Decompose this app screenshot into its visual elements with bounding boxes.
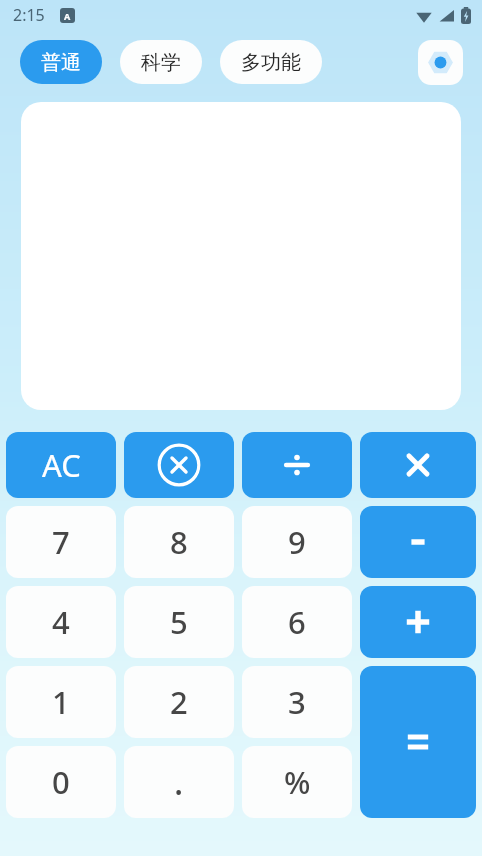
button[interactable]: 科学 bbox=[120, 40, 202, 84]
staticText: 4 bbox=[52, 601, 70, 643]
button[interactable]: % bbox=[242, 746, 352, 818]
button[interactable]: 多功能 bbox=[220, 40, 322, 84]
staticText: 7 bbox=[52, 521, 70, 563]
button[interactable]: 7 bbox=[6, 506, 116, 578]
staticText: 0 bbox=[52, 761, 70, 803]
staticText: 6 bbox=[288, 601, 306, 643]
button[interactable]: Multiply bbox=[360, 432, 476, 498]
button[interactable]: 6 bbox=[242, 586, 352, 658]
staticText: 5 bbox=[170, 601, 188, 643]
button[interactable]: 2 bbox=[124, 666, 234, 738]
button[interactable]: 普通 bbox=[20, 40, 102, 84]
staticText: 多功能 bbox=[241, 50, 301, 75]
button[interactable]: Theme settings bbox=[418, 40, 463, 85]
staticText: 2:15 bbox=[13, 4, 45, 26]
button[interactable]: 8 bbox=[124, 506, 234, 578]
button[interactable]: . bbox=[124, 746, 234, 818]
button[interactable]: 5 bbox=[124, 586, 234, 658]
staticText: 科学 bbox=[141, 50, 181, 75]
button[interactable]: Add bbox=[360, 586, 476, 658]
staticText: 普通 bbox=[41, 50, 81, 75]
button[interactable]: All clear bbox=[6, 432, 116, 498]
button[interactable]: Equals bbox=[360, 666, 476, 818]
button[interactable]: 1 bbox=[6, 666, 116, 738]
button[interactable]: Divide bbox=[242, 432, 352, 498]
button[interactable]: Subtract bbox=[360, 506, 476, 578]
staticText: % bbox=[284, 761, 311, 803]
staticText: 9 bbox=[288, 521, 306, 563]
staticText: A bbox=[64, 10, 71, 22]
button[interactable]: 3 bbox=[242, 666, 352, 738]
staticText: 8 bbox=[170, 521, 188, 563]
staticText: 3 bbox=[288, 681, 306, 723]
button[interactable]: 0 bbox=[6, 746, 116, 818]
staticText: 1 bbox=[52, 681, 70, 723]
staticText: . bbox=[174, 759, 184, 805]
staticText: AC bbox=[42, 444, 81, 486]
button[interactable]: 9 bbox=[242, 506, 352, 578]
staticText: 2 bbox=[170, 681, 188, 723]
button[interactable]: 4 bbox=[6, 586, 116, 658]
button[interactable]: Clear bbox=[124, 432, 234, 498]
